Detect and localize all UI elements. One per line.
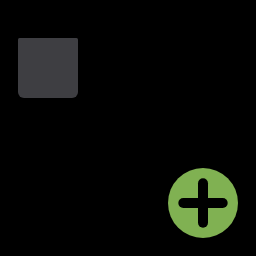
button[interactable]: Card xyxy=(18,38,78,98)
button[interactable]: Add xyxy=(168,168,238,238)
